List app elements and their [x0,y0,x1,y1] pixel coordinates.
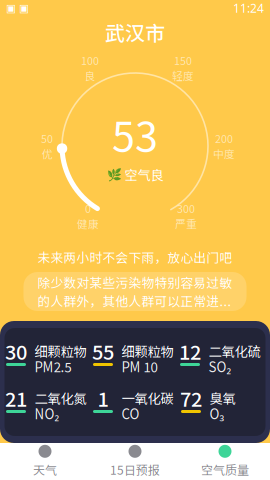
staticText: 二氧化氮 [34,388,86,408]
button[interactable]: 空气质量 [180,443,270,480]
staticText: 55 [92,336,114,365]
staticText: 21 [5,383,27,412]
staticText: 72 [180,383,202,412]
staticText: 12 [179,336,201,365]
staticText: 11:24 [233,0,264,16]
staticText: 除少数对某些污染物特别容易过敏的人群外，其他人群可以正常进... [37,273,232,310]
staticText: 细颗粒物 [34,341,86,361]
staticText: PM2.5 [34,357,71,376]
staticText: 空气质量 [201,461,249,478]
staticText: PM 10 [121,357,157,376]
staticText: 天气 [33,461,57,478]
staticText: NO₂ [34,404,59,423]
button[interactable]: 15日预报 [90,443,180,480]
staticText: 200 [215,131,233,146]
staticText: SO₂ [208,357,231,376]
staticText: ▣ [6,2,16,14]
staticText: 健康 [77,216,99,231]
staticText: 轻度 [172,68,194,83]
button[interactable]: 天气 [0,443,90,480]
staticText: 严重 [175,216,197,231]
staticText: 0 [85,201,91,216]
staticText: 良 [84,68,95,83]
staticText: 15日预报 [110,461,160,478]
staticText: 空气良 [124,165,163,184]
staticText: 一氧化碳 [121,388,173,408]
staticText: 武汉市 [105,17,165,46]
staticText: 150 [174,53,192,68]
staticText: 50 [41,131,53,146]
staticText: 53 [112,104,158,164]
staticText: 臭氧 [209,388,235,408]
staticText: 优 [41,146,52,161]
staticText: 细颗粒物 [121,341,173,361]
staticText: 300 [177,201,195,216]
staticText: 未来两小时不会下雨，放心出门吧 [37,248,232,266]
staticText: 30 [5,336,27,365]
staticText: 中度 [213,146,235,161]
staticText: 二氧化硫 [208,341,260,361]
staticText: CO [121,404,139,423]
staticText: 1 [97,383,108,412]
staticText: ▣ [19,2,29,14]
staticText: O₃ [209,404,224,423]
staticText: 100 [81,53,99,68]
staticText: 🌿 [106,167,121,181]
